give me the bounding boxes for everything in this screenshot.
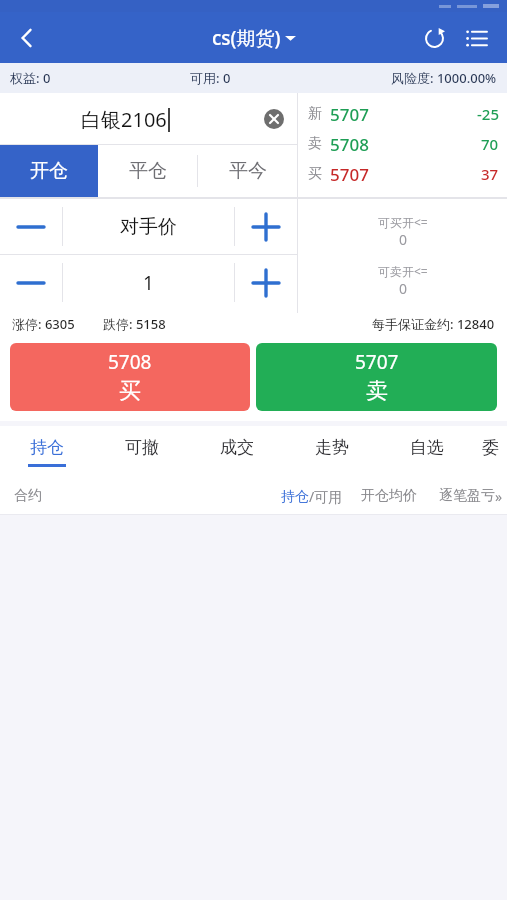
staticText: 开仓 (30, 159, 68, 183)
button[interactable]: 5707 (256, 343, 497, 411)
button[interactable]: 对手价 (63, 199, 234, 254)
staticText: 权益: 0 (10, 69, 51, 87)
button[interactable]: Decrease (0, 255, 62, 310)
staticText: 5708 (108, 349, 152, 375)
button[interactable]: 5708 (10, 343, 250, 411)
staticText: /可用 (309, 487, 343, 506)
button[interactable]: Back (0, 12, 54, 63)
staticText: 1 (143, 270, 154, 296)
staticText: 逐笔盈亏 (439, 487, 495, 505)
button[interactable]: 1 (63, 255, 234, 310)
button[interactable]: 平今 (198, 145, 297, 197)
button[interactable]: 持仓 (0, 426, 94, 478)
staticText: 自选 (410, 437, 444, 458)
staticText: 风险度: 1000.00% (391, 69, 497, 87)
staticText: 可卖开<= (378, 263, 428, 279)
staticText: 5708 (330, 133, 369, 156)
staticText: 对手价 (120, 215, 177, 239)
staticText: 平仓 (129, 159, 167, 183)
staticText: 平今 (229, 159, 267, 183)
staticText: 5707 (330, 103, 369, 126)
staticText: 可用: 0 (190, 69, 231, 87)
staticText: 可买开<= (378, 214, 428, 230)
button[interactable]: 委 (474, 426, 507, 478)
staticText: 5707 (330, 163, 369, 186)
staticText: 可撤 (125, 437, 159, 458)
button[interactable]: 成交 (189, 426, 284, 478)
button[interactable]: 白银2106 (0, 93, 297, 145)
staticText: 5707 (355, 349, 399, 375)
staticText: 每手保证金约: 12840 (372, 315, 495, 333)
button[interactable]: Increase (235, 255, 297, 310)
staticText: » (495, 487, 503, 506)
staticText: 37 (481, 164, 499, 184)
button[interactable]: 开仓 (0, 145, 98, 197)
staticText: 开仓均价 (361, 487, 417, 505)
staticText: cs(期货) (212, 25, 281, 51)
staticText: -25 (477, 104, 499, 124)
staticText: 涨停: 6305 (12, 315, 75, 333)
staticText: 买 (119, 377, 141, 405)
staticText: 成交 (220, 437, 254, 458)
staticText: 合约 (14, 487, 42, 505)
button[interactable]: 走势 (284, 426, 379, 478)
button[interactable]: Menu (455, 17, 497, 59)
staticText: 委 (482, 437, 499, 458)
staticText: 走势 (315, 437, 349, 458)
button[interactable]: Clear (251, 96, 297, 142)
staticText: 0 (399, 230, 408, 249)
button[interactable]: Decrease (0, 199, 62, 254)
staticText: 跌停: 5158 (103, 315, 166, 333)
button[interactable]: 自选 (379, 426, 474, 478)
staticText: 持仓 (281, 488, 309, 506)
staticText: 卖 (366, 377, 388, 405)
staticText: 70 (481, 134, 499, 154)
button[interactable]: Refresh (413, 17, 455, 59)
button[interactable]: Increase (235, 199, 297, 254)
button[interactable]: 平仓 (98, 145, 197, 197)
staticText: 持仓 (30, 437, 64, 458)
staticText: 卖 (308, 135, 322, 153)
staticText: 买 (308, 165, 322, 183)
staticText: 0 (399, 279, 408, 298)
staticText: 新 (308, 105, 322, 123)
button[interactable]: cs(期货) (212, 25, 296, 51)
button[interactable]: 可撤 (94, 426, 189, 478)
staticText: 白银2106 (81, 106, 167, 133)
